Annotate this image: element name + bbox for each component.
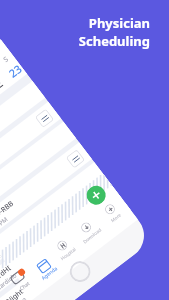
staticText: Hospital <box>59 246 77 261</box>
button[interactable]: Download <box>72 215 105 246</box>
staticText: Chat <box>18 280 31 292</box>
button[interactable]: Night <box>0 203 138 300</box>
staticText: More <box>109 211 123 223</box>
staticText: 22 <box>0 75 6 95</box>
button[interactable]: S <box>0 40 27 86</box>
button[interactable]: Event <box>0 162 107 277</box>
button[interactable]: More <box>96 197 129 228</box>
staticText: 23 <box>5 61 25 81</box>
staticText: Location <box>0 251 4 272</box>
staticText: Physician <box>88 14 150 32</box>
button[interactable]: Swap shift <box>96 189 115 208</box>
staticText: CardHD <box>0 262 15 286</box>
button[interactable]: Chat <box>4 266 37 298</box>
staticText: Agenda <box>40 265 60 282</box>
staticText: Night <box>4 287 26 300</box>
button[interactable]: Home <box>65 257 95 286</box>
button[interactable]: CardHD <box>0 182 122 297</box>
staticText: OR - 3 <box>10 296 29 300</box>
staticText: S <box>1 54 11 65</box>
button[interactable]: Add shift <box>83 182 109 208</box>
button[interactable]: V 20 <box>0 122 76 236</box>
staticText: Scheduling <box>78 32 150 50</box>
button[interactable]: RBB <box>0 81 45 196</box>
button[interactable]: HND / CARDIO-RBB <box>0 142 92 257</box>
staticText: 7:00 AM - 7:00 PM <box>0 215 10 252</box>
button[interactable]: Swap shift <box>35 108 54 128</box>
staticText: HND / CARDIO-RBB <box>0 199 16 246</box>
staticText: Cardiology 2 <box>0 264 28 292</box>
staticText: Download <box>82 226 103 244</box>
button[interactable]: F <box>0 52 11 100</box>
button[interactable]: RBB 2 - 7a <box>0 102 61 217</box>
button[interactable]: Swap shift <box>66 149 85 169</box>
button[interactable]: Hospital <box>48 233 81 264</box>
button[interactable]: Agenda <box>29 253 63 285</box>
